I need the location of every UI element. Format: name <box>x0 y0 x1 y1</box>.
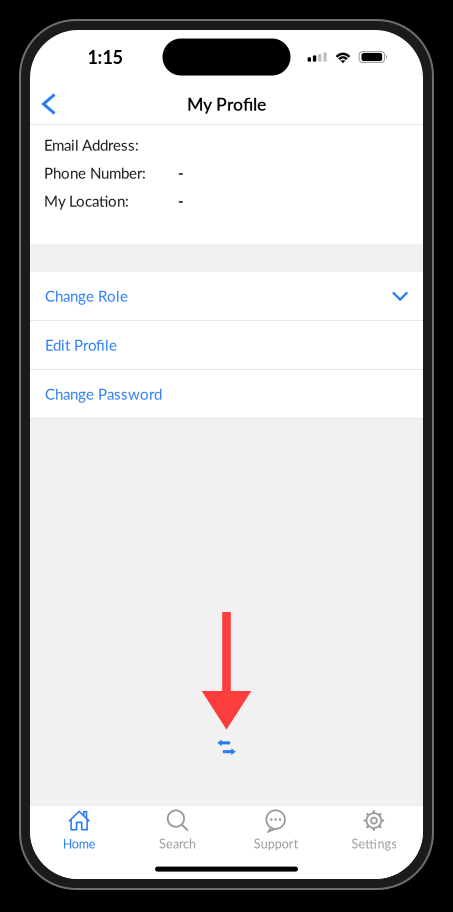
staticText: Change Password <box>45 385 162 403</box>
button[interactable]: Change Password <box>30 370 423 418</box>
staticText: 1:15 <box>87 46 122 68</box>
button[interactable]: Edit Profile <box>30 321 423 369</box>
staticText: Home <box>63 836 96 851</box>
staticText: - <box>178 192 184 210</box>
staticText: Search <box>159 836 196 851</box>
staticText: Settings <box>351 836 396 851</box>
button[interactable]: Support <box>226 806 325 856</box>
button[interactable]: Settings <box>325 806 423 856</box>
staticText: Edit Profile <box>45 336 117 354</box>
button[interactable]: Home <box>30 806 128 856</box>
staticText: Email Address: <box>44 136 139 154</box>
staticText: Change Role <box>45 287 128 305</box>
staticText: My Location: <box>44 192 129 210</box>
button[interactable]: Back <box>30 82 68 126</box>
button[interactable]: Change Role <box>30 272 423 320</box>
staticText: - <box>178 164 184 182</box>
staticText: Phone Number: <box>44 164 146 182</box>
staticText: My Profile <box>187 93 266 114</box>
button[interactable]: Search <box>128 806 226 856</box>
staticText: Support <box>254 836 298 851</box>
